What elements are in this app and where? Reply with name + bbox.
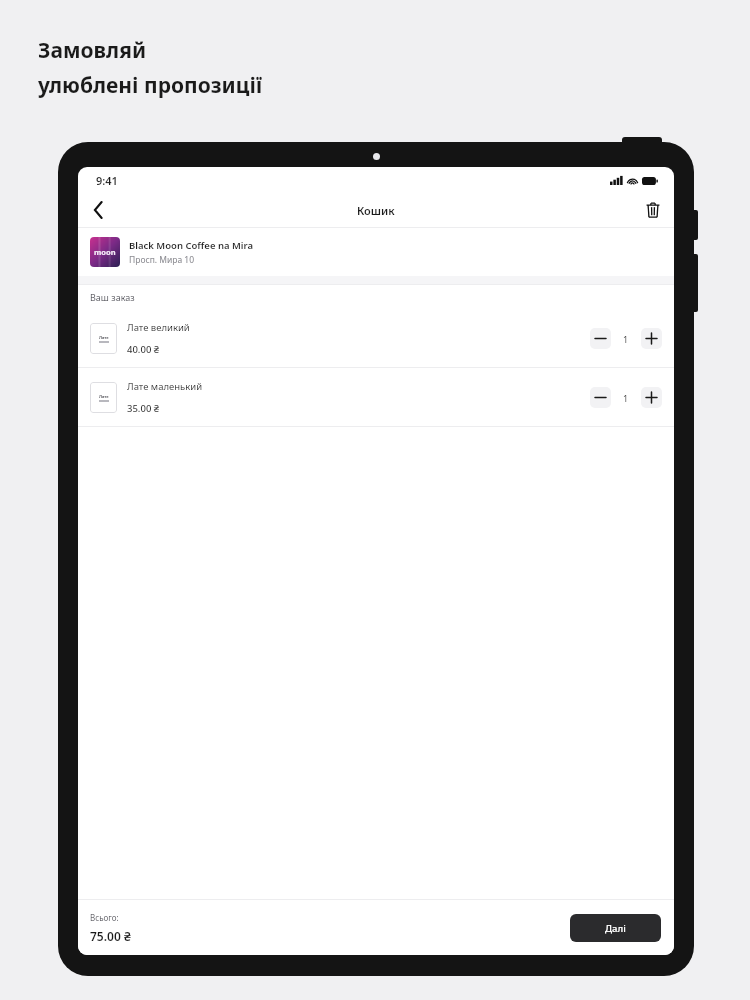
button[interactable]: Increase quantity	[641, 387, 662, 408]
staticText: Кошик	[357, 203, 395, 218]
button[interactable]: Лате	[78, 309, 674, 367]
staticText: Лате великий	[127, 321, 190, 334]
button[interactable]: Лате	[78, 368, 674, 426]
staticText: Просп. Мира 10	[129, 254, 195, 266]
button[interactable]: Decrease quantity	[590, 387, 611, 408]
staticText: 40.00 ₴	[127, 343, 160, 356]
staticText: Лате	[99, 394, 109, 399]
staticText: 1	[623, 333, 629, 345]
staticText: Всього:	[90, 912, 119, 923]
staticText: Ваш заказ	[90, 291, 135, 303]
staticText: Далі	[605, 922, 626, 935]
staticText: moon	[94, 247, 116, 257]
button[interactable]: Decrease quantity	[590, 328, 611, 349]
staticText: улюблені пропозиції	[38, 71, 263, 100]
button[interactable]: moon	[78, 228, 674, 276]
staticText: 9:41	[96, 173, 118, 188]
button[interactable]: Back	[78, 193, 118, 227]
staticText: Лате маленький	[127, 380, 203, 393]
button[interactable]: Далі	[570, 914, 661, 942]
button[interactable]: Increase quantity	[641, 328, 662, 349]
staticText: Замовляй	[38, 36, 147, 65]
staticText: Лате	[99, 335, 109, 340]
staticText: 1	[623, 392, 629, 404]
staticText: 75.00 ₴	[90, 928, 131, 944]
staticText: Black Moon Coffee na Mira	[129, 239, 254, 252]
staticText: 35.00 ₴	[127, 402, 160, 415]
button[interactable]: Delete all	[632, 193, 674, 227]
